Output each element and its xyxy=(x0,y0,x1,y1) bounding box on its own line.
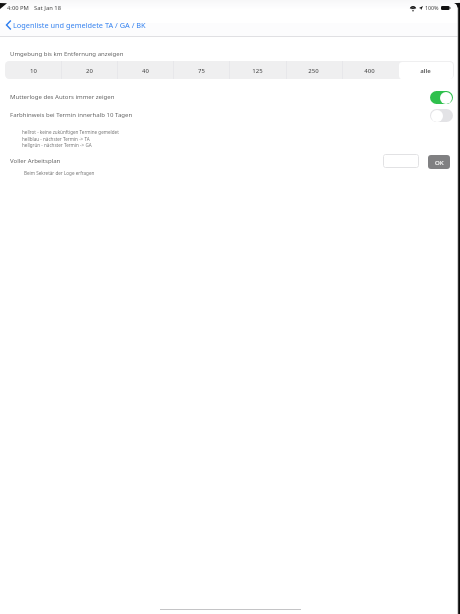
button[interactable]: 250 xyxy=(285,61,341,79)
staticText: alle xyxy=(420,67,431,75)
button[interactable]: Ausgeschaltet xyxy=(430,109,453,122)
staticText: 400 xyxy=(364,67,375,75)
button[interactable]: Logenliste und gemeldete TA / GA / BK xyxy=(0,20,146,30)
staticText: hellblau - nächster Termin -> TA xyxy=(22,136,90,142)
staticText: OK xyxy=(435,158,444,166)
staticText: Voller Arbeitsplan xyxy=(10,157,61,165)
staticText: hellgrün - nächster Termin -> GA xyxy=(22,142,92,148)
staticText: 125 xyxy=(252,67,263,75)
staticText: 40 xyxy=(142,67,149,75)
staticText: 4:00 PM xyxy=(7,4,29,12)
staticText: 10 xyxy=(30,67,37,75)
staticText: Farbhinweis bei Termin innerhalb 10 Tage… xyxy=(10,111,133,119)
button[interactable]: 125 xyxy=(229,61,285,79)
button[interactable]: alle xyxy=(397,61,453,79)
staticText: 75 xyxy=(198,67,205,75)
button[interactable]: OK xyxy=(428,155,450,169)
button[interactable]: Code eingeben xyxy=(383,154,419,168)
staticText: Logenliste und gemeldete TA / GA / BK xyxy=(13,20,146,30)
staticText: 250 xyxy=(308,67,319,75)
staticText: Mutterloge des Autors immer zeigen xyxy=(10,93,115,101)
staticText: Beim Sekretär der Loge erfragen xyxy=(24,170,95,176)
staticText: Sat Jan 18 xyxy=(34,4,62,12)
button[interactable]: 10 xyxy=(5,61,61,79)
staticText: hellrot - keine zukünftigen Termine geme… xyxy=(22,129,119,135)
button[interactable]: 75 xyxy=(173,61,229,79)
button[interactable]: Eingeschaltet xyxy=(430,91,453,104)
button[interactable]: 400 xyxy=(341,61,397,79)
staticText: Umgebung bis km Entfernung anzeigen xyxy=(10,50,124,58)
button[interactable]: 40 xyxy=(117,61,173,79)
staticText: 100% xyxy=(425,4,439,11)
button[interactable]: 20 xyxy=(61,61,117,79)
staticText: 20 xyxy=(86,67,93,75)
